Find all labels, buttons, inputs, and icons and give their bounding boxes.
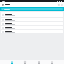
- button[interactable]: Menu: [1, 3, 4, 6]
- button[interactable]: [1, 18, 63, 21]
- button[interactable]: Profile: [50, 61, 54, 64]
- button[interactable]: Search field: [0, 7, 64, 11]
- button[interactable]: Explore: [23, 61, 27, 64]
- button[interactable]: Search: [57, 3, 60, 6]
- button[interactable]: [1, 26, 63, 29]
- button[interactable]: Alerts: [37, 61, 41, 64]
- button[interactable]: More options: [60, 3, 63, 6]
- button[interactable]: Home: [10, 61, 14, 64]
- button[interactable]: [1, 30, 63, 33]
- button[interactable]: [1, 22, 63, 25]
- button[interactable]: [1, 12, 63, 17]
